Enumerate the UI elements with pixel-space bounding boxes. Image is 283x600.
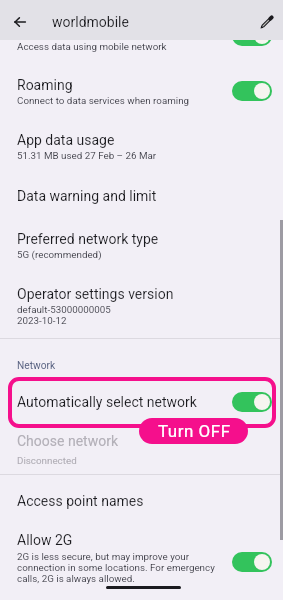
staticText: 5G (recommended) xyxy=(17,249,102,260)
staticText: Automatically select network xyxy=(17,394,197,410)
staticText: Roaming xyxy=(17,77,73,93)
button[interactable]: Back xyxy=(3,5,37,39)
button[interactable]: Operator settings version xyxy=(0,273,283,338)
staticText: Preferred network type xyxy=(17,231,159,247)
staticText: Network xyxy=(17,360,56,372)
button[interactable]: Access point names xyxy=(0,475,283,526)
button[interactable]: Edit xyxy=(250,6,282,38)
button[interactable]: App data usage xyxy=(0,118,283,175)
staticText: Allow 2G xyxy=(17,532,73,548)
staticText: Data warning and limit xyxy=(17,188,157,204)
button[interactable]: Turn OFF xyxy=(139,418,248,444)
button[interactable]: Roaming xyxy=(0,64,283,118)
staticText: worldmobile xyxy=(52,14,129,30)
button[interactable]: Choose network xyxy=(0,427,283,474)
staticText: Operator settings version xyxy=(17,286,174,302)
staticText: Connect to data services when roaming xyxy=(17,95,190,106)
button[interactable]: Automatically select network xyxy=(0,376,283,427)
staticText: Choose network xyxy=(17,433,118,449)
staticText: Access data using mobile network xyxy=(17,41,167,52)
staticText: App data usage xyxy=(17,132,115,148)
staticText: Disconnected xyxy=(17,455,77,466)
button[interactable]: Preferred network type xyxy=(0,217,283,273)
staticText: 51.31 MB used 27 Feb – 26 Mar xyxy=(17,150,157,161)
staticText: Access point names xyxy=(17,493,144,509)
button[interactable]: Allow 2G xyxy=(0,526,283,584)
staticText: default-53000000005 2023-10-12 xyxy=(17,304,111,326)
staticText: Turn OFF xyxy=(158,421,231,441)
button[interactable]: Data warning and limit xyxy=(0,175,283,217)
staticText: 2G is less secure, but may improve your … xyxy=(17,551,215,584)
